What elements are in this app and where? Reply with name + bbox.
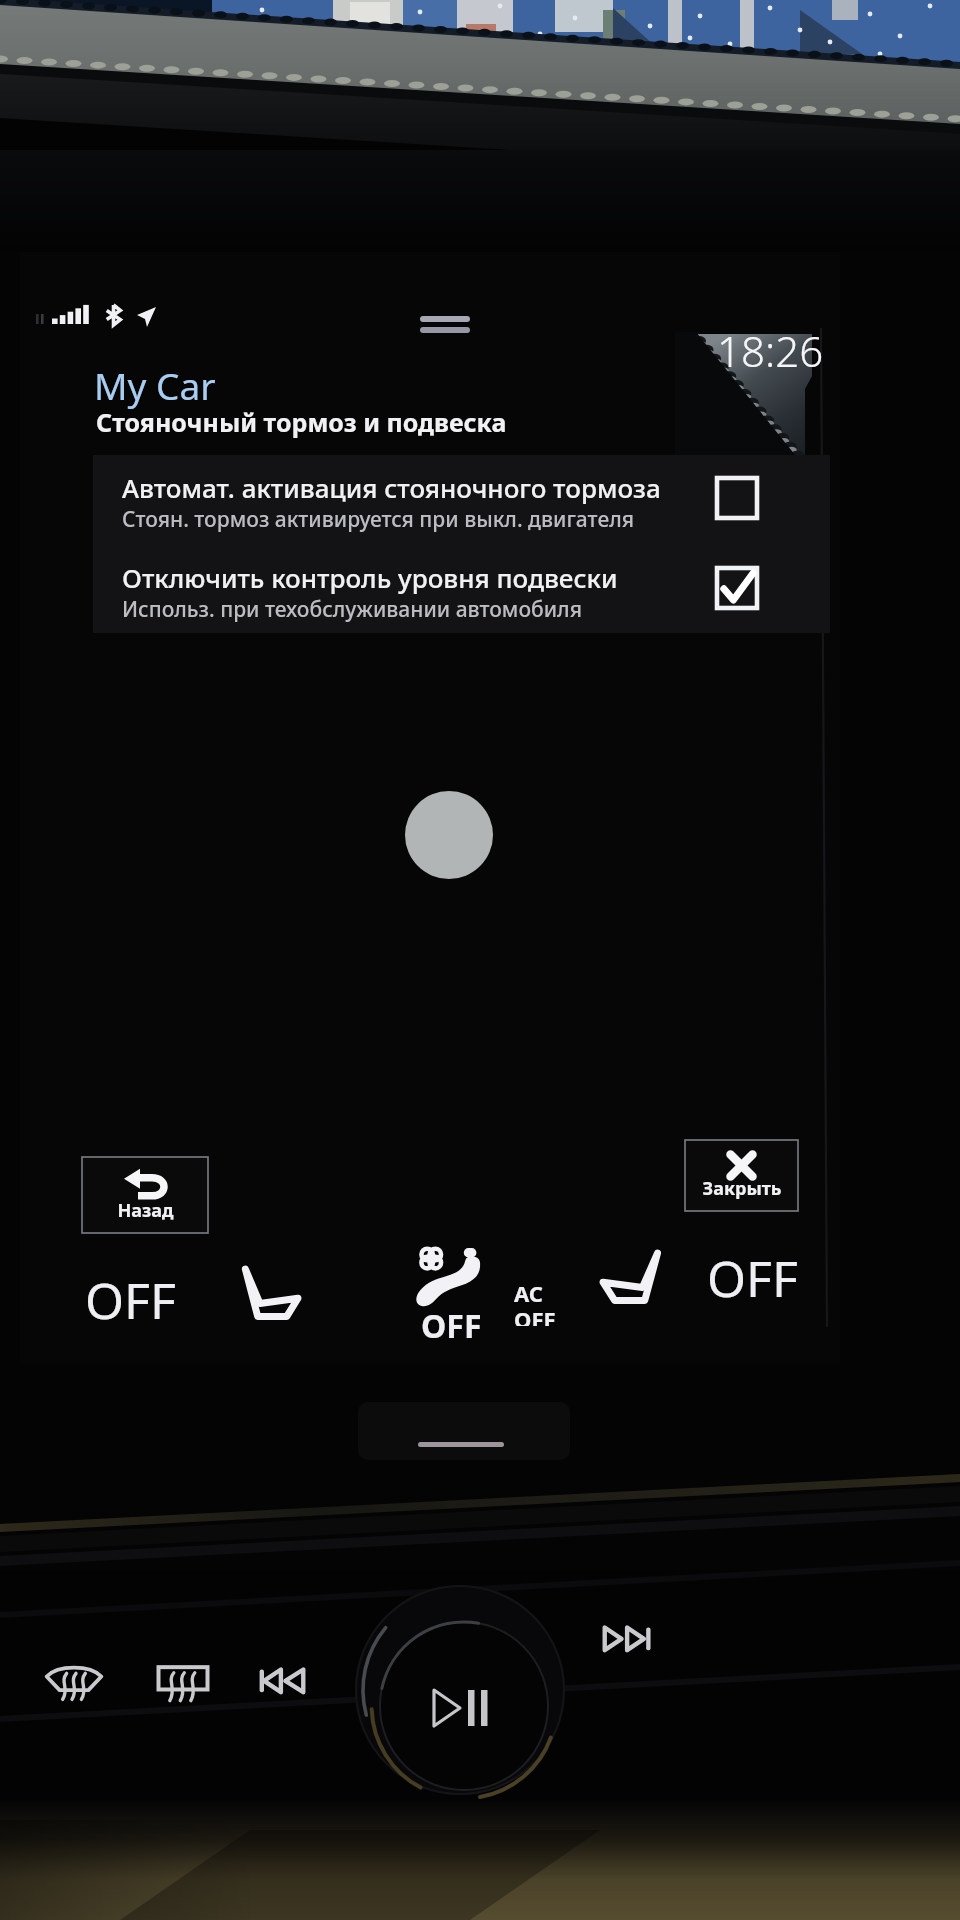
- staticText: Автомат. активация стояночного тормоза: [122, 470, 661, 505]
- button[interactable]: Воспроизведение и пауза: [355, 1585, 565, 1795]
- button[interactable]: AC: [512, 1278, 558, 1330]
- staticText: Стояночный тормоз и подвеска: [96, 405, 507, 439]
- button[interactable]: Подогрев правого сиденья: [603, 1250, 661, 1302]
- staticText: 18:26: [717, 322, 824, 379]
- staticText: OFF: [514, 1304, 556, 1326]
- button[interactable]: Отключить контроль уровня подвески: [93, 545, 830, 633]
- button[interactable]: Автомат. активация стояночного тормоза: [93, 455, 830, 545]
- button[interactable]: Обогрев заднего стекла: [148, 1656, 218, 1718]
- button[interactable]: Обогрев лобового стекла: [38, 1656, 110, 1718]
- staticText: Закрыть: [702, 1176, 782, 1201]
- button[interactable]: Предыдущий трек: [254, 1656, 310, 1710]
- staticText: OFF: [85, 1266, 176, 1330]
- staticText: My Car: [94, 360, 216, 410]
- button[interactable]: Назад: [82, 1157, 208, 1233]
- button[interactable]: Подогрев левого сиденья: [242, 1266, 298, 1318]
- staticText: OFF: [707, 1244, 798, 1308]
- staticText: AC: [514, 1278, 543, 1308]
- button[interactable]: OFF: [696, 1244, 808, 1308]
- button[interactable]: Закрыть: [685, 1140, 798, 1211]
- staticText: Стоян. тормоз активируется при выкл. дви…: [122, 505, 635, 534]
- button[interactable]: Вентиляция сиденья: [412, 1246, 486, 1306]
- button[interactable]: Следующий трек: [598, 1614, 654, 1668]
- staticText: Назад: [117, 1198, 174, 1223]
- staticText: Отключить контроль уровня подвески: [122, 560, 618, 595]
- button[interactable]: OFF: [70, 1266, 190, 1330]
- staticText: OFF: [421, 1304, 482, 1340]
- staticText: Использ. при техобслуживании автомобиля: [122, 595, 582, 624]
